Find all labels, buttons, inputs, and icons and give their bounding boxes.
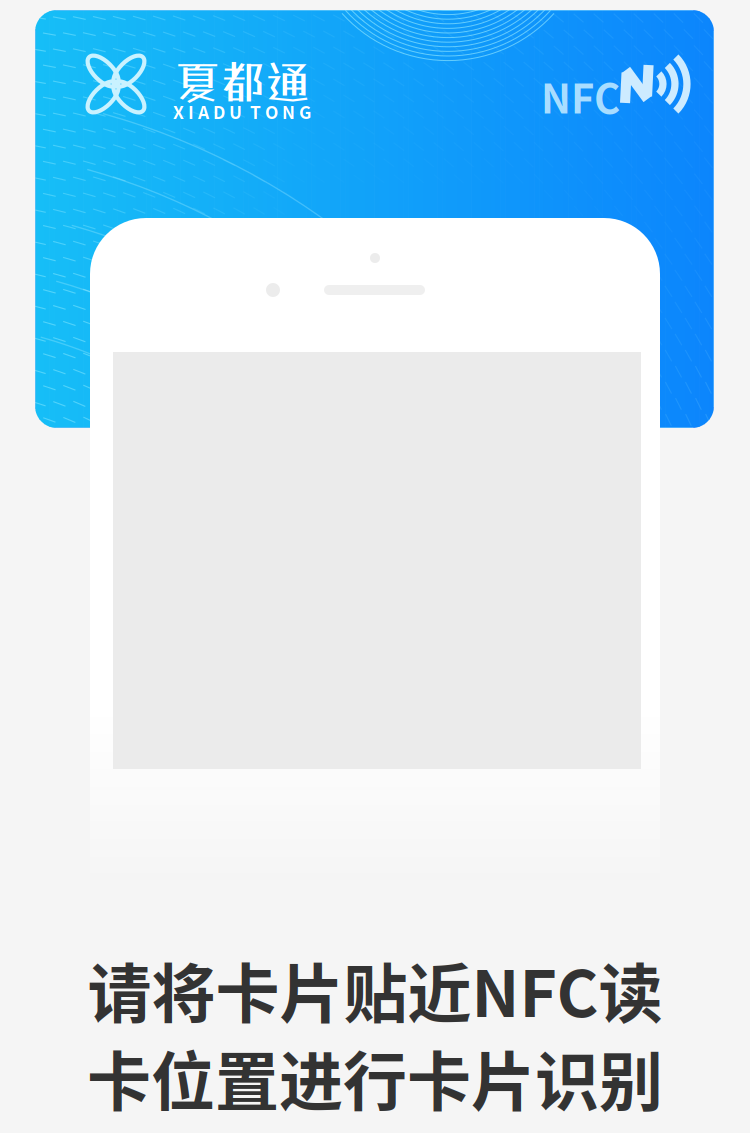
staticText: NFC bbox=[541, 67, 620, 125]
staticText: 卡位置进行卡片识别 bbox=[87, 1031, 663, 1123]
staticText: 请将卡片贴近NFC读 bbox=[87, 943, 662, 1035]
staticText: X I A D U T O N G bbox=[173, 99, 311, 124]
staticText: 夏都通 bbox=[175, 55, 310, 108]
